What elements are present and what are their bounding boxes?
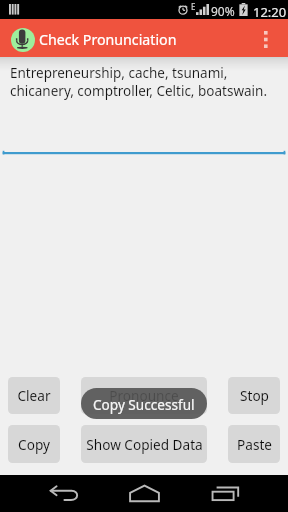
- button[interactable]: Copy: [8, 425, 60, 463]
- staticText: Copy Successful: [93, 395, 195, 414]
- staticText: 12:20: [253, 3, 287, 21]
- button[interactable]: Clear: [8, 377, 60, 414]
- staticText: Copy: [18, 435, 50, 454]
- staticText: 90%: [211, 3, 235, 19]
- button[interactable]: Home: [115, 475, 173, 512]
- staticText: Paste: [237, 435, 272, 454]
- button[interactable]: Show Copied Data: [81, 425, 207, 463]
- button[interactable]: Paste: [228, 425, 280, 463]
- staticText: Show Copied Data: [86, 435, 203, 454]
- button[interactable]: Stop: [228, 377, 280, 414]
- staticText: E: [191, 1, 196, 12]
- button[interactable]: More options: [244, 19, 288, 57]
- button[interactable]: Back: [36, 475, 93, 512]
- button[interactable]: Recent apps: [196, 475, 254, 512]
- staticText: Check Pronunciation: [39, 30, 177, 49]
- staticText: Pronounce: [109, 386, 179, 405]
- button[interactable]: Pronounce: [81, 377, 207, 414]
- staticText: Entrepreneurship, cache, tsunami, chican…: [10, 64, 268, 100]
- staticText: Clear: [17, 386, 51, 405]
- staticText: Stop: [240, 386, 269, 405]
